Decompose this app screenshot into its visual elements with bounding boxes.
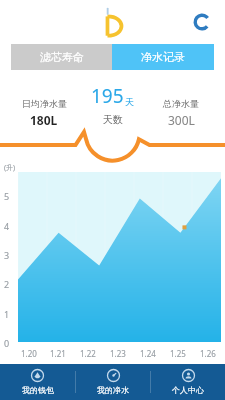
button[interactable]: 我的净水: [76, 364, 150, 400]
staticText: 5: [4, 190, 10, 202]
button[interactable]: Refresh: [192, 12, 212, 32]
staticText: 天: [125, 96, 134, 107]
button[interactable]: 净水记录: [112, 44, 214, 70]
staticText: 2: [4, 278, 10, 290]
staticText: 我的钱包: [22, 385, 54, 395]
staticText: 天数: [103, 113, 123, 126]
staticText: 1.20: [21, 348, 37, 359]
staticText: 滤芯寿命: [40, 50, 84, 64]
staticText: 1.21: [50, 348, 66, 359]
button[interactable]: 我的钱包: [0, 364, 75, 400]
staticText: 3: [4, 249, 10, 261]
staticText: 1.23: [110, 348, 126, 359]
staticText: 净水记录: [141, 50, 185, 64]
button[interactable]: 个人中心: [151, 364, 225, 400]
staticText: 1: [4, 308, 10, 320]
staticText: (升): [4, 163, 16, 173]
staticText: 4: [4, 220, 10, 232]
staticText: 0: [4, 337, 10, 349]
staticText: 我的净水: [97, 385, 129, 395]
staticText: 总净水量: [163, 98, 199, 109]
staticText: 300L: [168, 112, 195, 128]
staticText: 1.24: [140, 348, 156, 359]
staticText: 1.25: [170, 348, 186, 359]
staticText: 1.26: [200, 348, 216, 359]
staticText: 195: [91, 83, 124, 109]
staticText: 个人中心: [172, 385, 204, 395]
button[interactable]: 滤芯寿命: [11, 44, 112, 70]
staticText: 180L: [30, 112, 58, 128]
staticText: 日均净水量: [22, 98, 67, 109]
staticText: 1.22: [80, 348, 96, 359]
